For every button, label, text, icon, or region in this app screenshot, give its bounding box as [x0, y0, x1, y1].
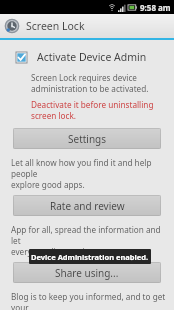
- button[interactable]: Settings: [13, 128, 161, 149]
- staticText: Screen Lock requires device administrati…: [31, 72, 149, 94]
- staticText: Screen Lock: [26, 19, 85, 33]
- staticText: Blog is to keep you informed, and to get…: [11, 291, 166, 310]
- button[interactable]: Share using...: [13, 262, 161, 283]
- button[interactable]: Rate and review: [13, 195, 161, 216]
- staticText: Share using...: [55, 266, 119, 280]
- staticText: Activate Device Admin: [37, 50, 147, 64]
- staticText: 9:58 am: [140, 2, 171, 13]
- button[interactable]: Activate Device Admin: [0, 48, 174, 66]
- staticText: Rate and review: [50, 199, 125, 213]
- staticText: Let all know how you find it and help pe…: [11, 157, 166, 190]
- staticText: Device Administration enabled.: [31, 252, 149, 262]
- staticText: Deactivate it before uninstalling screen…: [31, 99, 154, 121]
- staticText: Settings: [68, 132, 107, 146]
- staticText: App for all, spread the information and …: [11, 224, 166, 257]
